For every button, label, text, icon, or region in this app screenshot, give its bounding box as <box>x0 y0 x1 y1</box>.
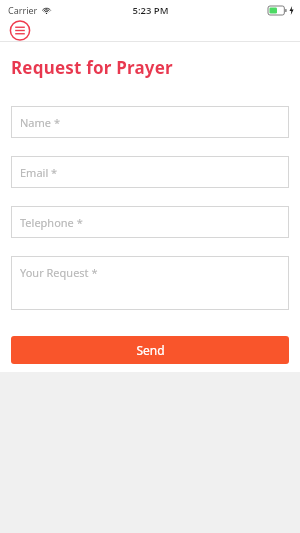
button[interactable]: Telephone * <box>11 206 289 238</box>
button[interactable]: Name * <box>11 106 289 138</box>
staticText: Telephone * <box>20 215 83 230</box>
button[interactable]: Email * <box>11 156 289 188</box>
staticText: Name * <box>20 115 60 130</box>
staticText: Your Request * <box>20 265 98 280</box>
staticText: Email * <box>20 165 58 180</box>
staticText: Carrier <box>8 4 38 16</box>
staticText: 5:23 PM <box>132 4 169 17</box>
staticText: Send <box>136 342 165 358</box>
button[interactable]: Your Request * <box>11 256 289 310</box>
button[interactable]: Menu <box>8 20 32 41</box>
button[interactable]: Send <box>11 336 289 364</box>
staticText: Request for Prayer <box>11 56 173 79</box>
